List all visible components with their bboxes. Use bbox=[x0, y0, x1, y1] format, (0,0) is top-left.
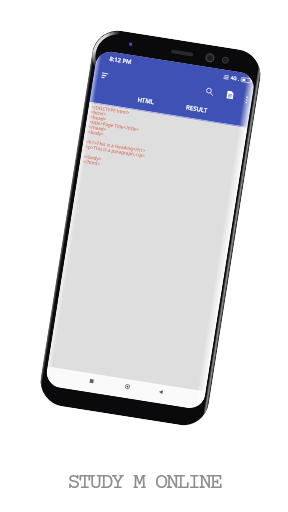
staticText: 8:12 PM bbox=[54, 75, 121, 99]
staticText: STUDY M ONLINE bbox=[67, 471, 221, 496]
staticText: <!DOCTYPE html> <html> <head> <title>Pag… bbox=[24, 229, 205, 413]
